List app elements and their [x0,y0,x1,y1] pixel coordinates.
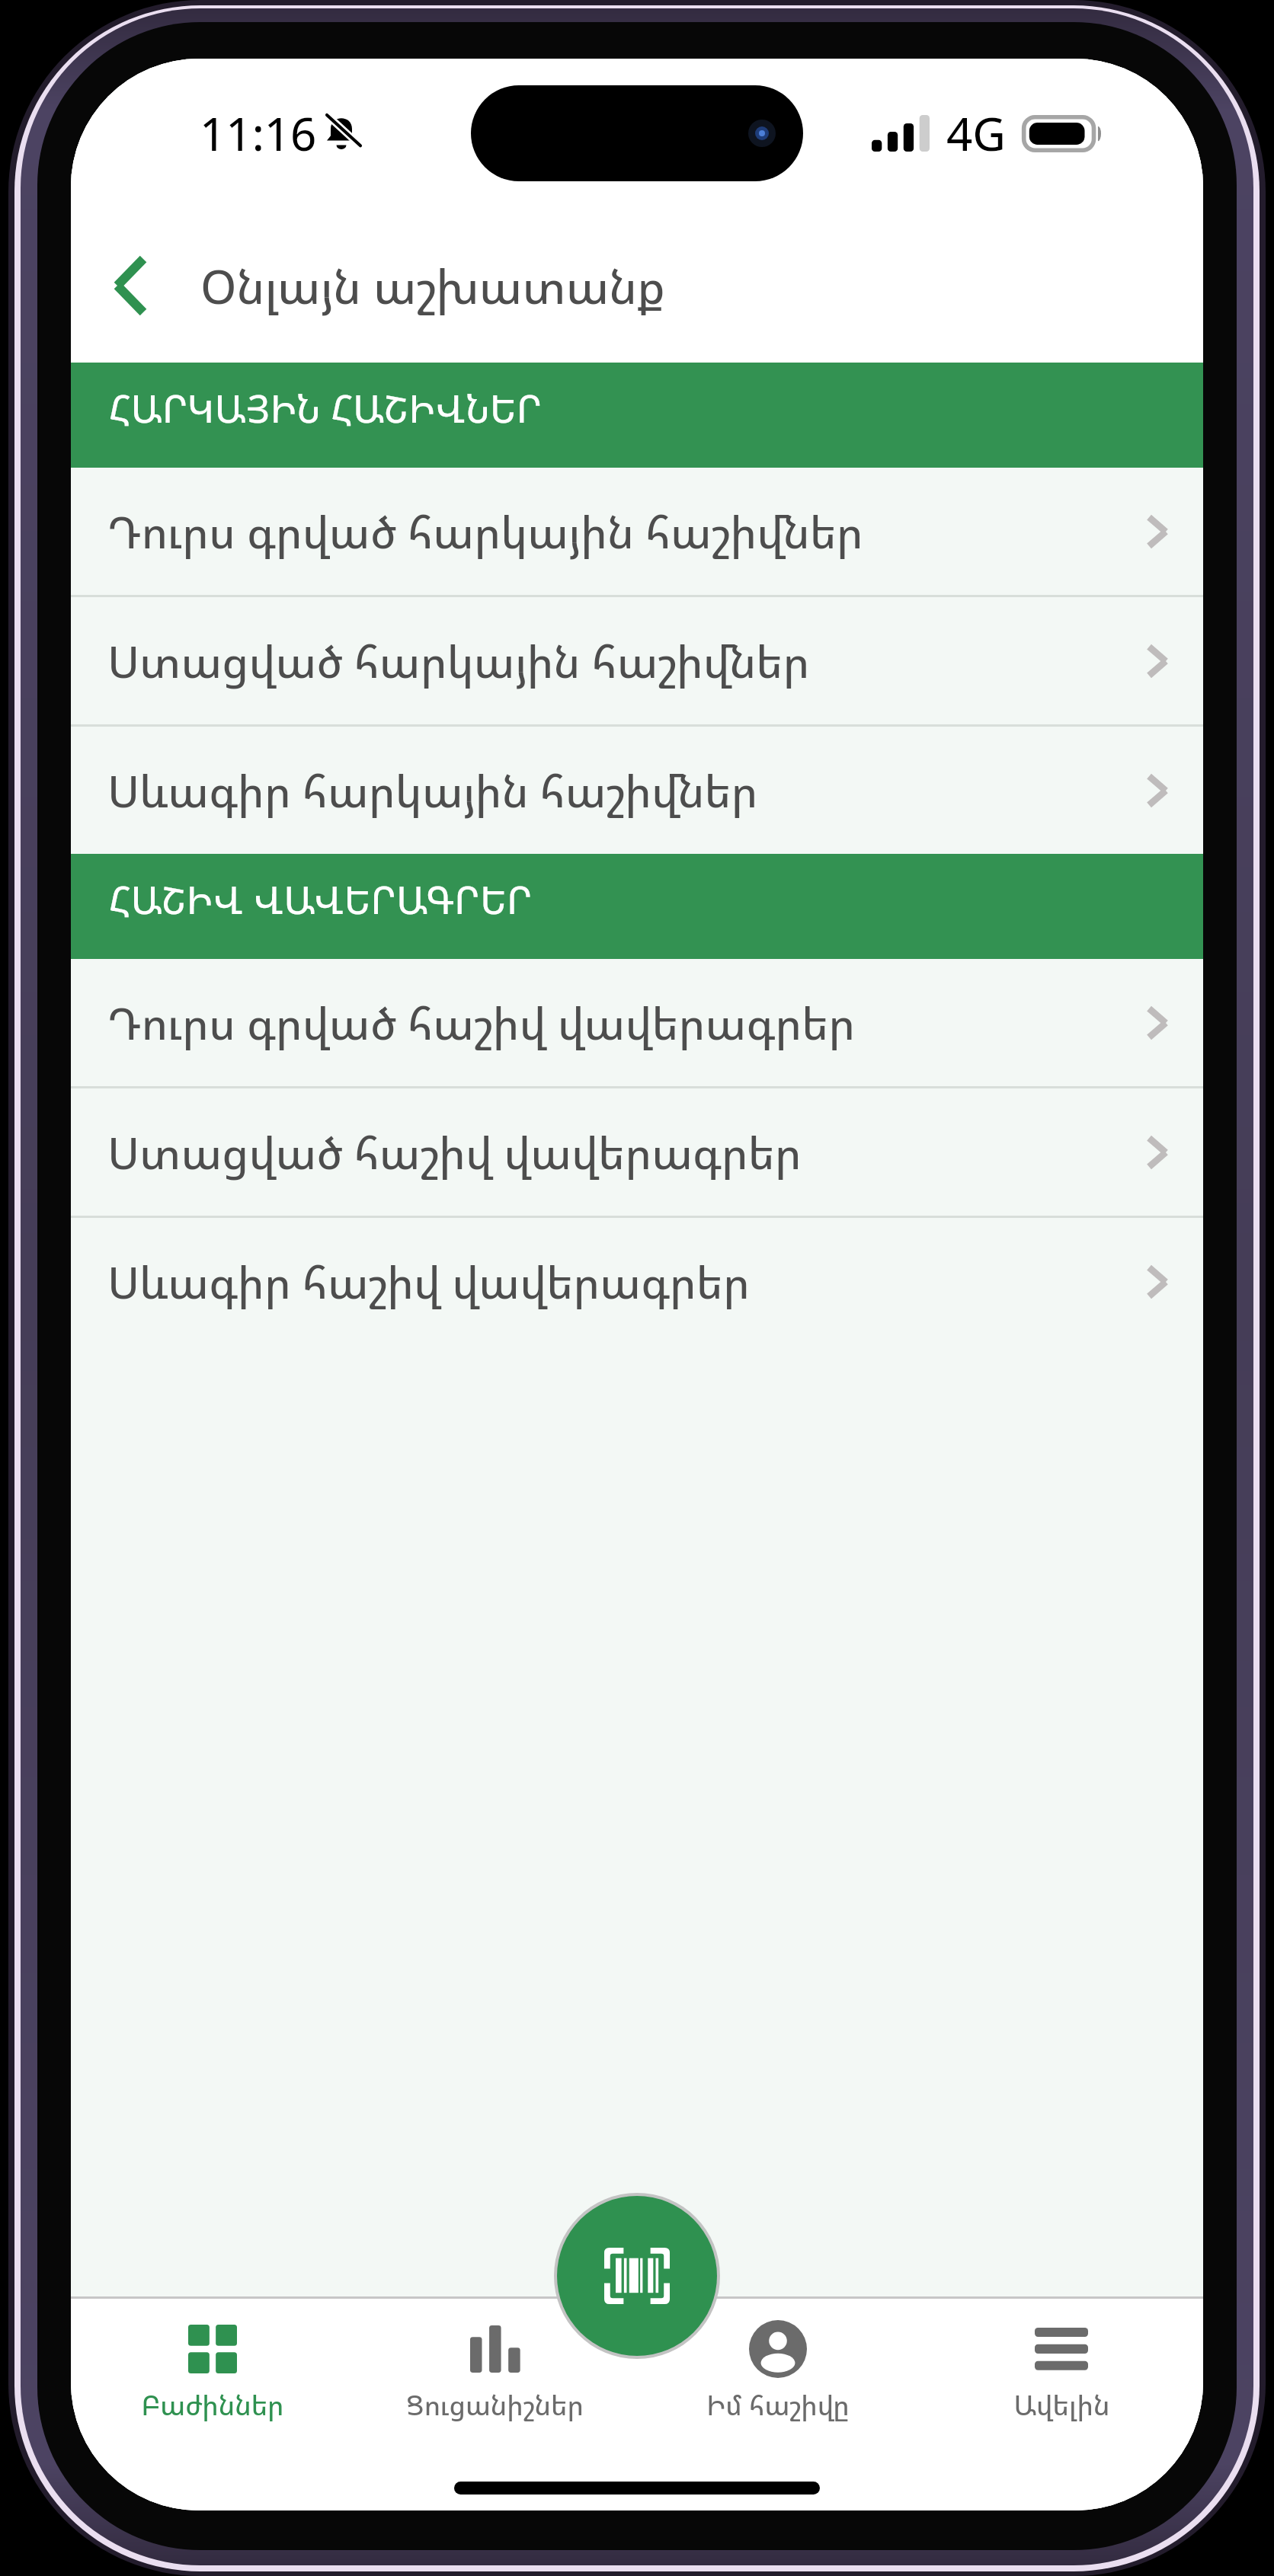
button[interactable]: Ստացված հաշիվ վավերագրեր [71,1088,1203,1216]
staticText: Իմ հաշիվը [706,2386,850,2423]
button[interactable]: Ցուցանիշներ [354,2299,636,2440]
button[interactable]: Scan barcode [557,2196,717,2356]
button[interactable]: Դուրս գրված հաշիվ վավերագրեր [71,959,1203,1086]
staticText: Ստացված հարկային հաշիվներ [107,631,1147,691]
staticText: 11:16 [200,102,317,165]
staticText: ՀԱՇԻՎ ՎԱՎԵՐԱԳՐԵՐ [109,874,533,925]
button[interactable]: Ավելին [920,2299,1203,2440]
staticText: Դուրս գրված հարկային հաշիվներ [107,501,1147,561]
staticText: 4G [946,102,1006,165]
staticText: Ստացված հաշիվ վավերագրեր [107,1122,1147,1182]
staticText: ՀԱՐԿԱՅԻՆ ՀԱՇԻՎՆԵՐ [109,383,543,434]
button[interactable]: Սևագիր հաշիվ վավերագրեր [71,1218,1203,1345]
button[interactable]: Իմ հաշիվը [636,2299,920,2440]
button[interactable]: Back [86,241,174,330]
staticText: Ավելին [1013,2386,1110,2423]
staticText: Բաժիններ [141,2386,284,2423]
staticText: Օնլայն աշխատանք [200,254,666,318]
button[interactable]: Ստացված հարկային հաշիվներ [71,597,1203,724]
staticText: Ցուցանիշներ [406,2386,584,2423]
staticText: Դուրս գրված հաշիվ վավերագրեր [107,992,1147,1053]
staticText: Սևագիր հարկային հաշիվներ [107,760,1147,820]
staticText: Սևագիր հաշիվ վավերագրեր [107,1251,1147,1312]
button[interactable]: Դուրս գրված հարկային հաշիվներ [71,468,1203,595]
button[interactable]: Բաժիններ [71,2299,354,2440]
button[interactable]: Սևագիր հարկային հաշիվներ [71,727,1203,854]
